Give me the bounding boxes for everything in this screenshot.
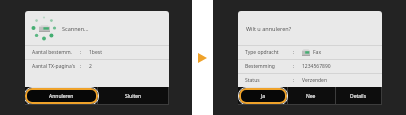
staticText: : bbox=[80, 63, 82, 70]
staticText: Scannen... bbox=[62, 25, 89, 32]
staticText: 2 bbox=[89, 63, 92, 70]
staticText: Aantal bestemm. bbox=[32, 49, 72, 56]
staticText: Wilt u annuleren? bbox=[246, 25, 292, 32]
button[interactable]: Status bbox=[238, 73, 382, 87]
button[interactable]: Bestemming bbox=[238, 59, 382, 73]
staticText: Fax bbox=[313, 49, 322, 56]
staticText: Details bbox=[350, 93, 367, 100]
button[interactable]: Type opdracht bbox=[238, 45, 382, 59]
button[interactable]: Ja bbox=[239, 88, 287, 104]
staticText: : bbox=[80, 49, 82, 56]
button[interactable]: Aantal bestemm. bbox=[25, 45, 169, 59]
staticText: Ja bbox=[261, 93, 266, 100]
staticText: Type opdracht bbox=[245, 49, 279, 56]
staticText: Annuleren bbox=[49, 93, 74, 100]
button[interactable]: Sluiten bbox=[97, 87, 169, 105]
staticText: : bbox=[293, 77, 295, 84]
staticText: 1best bbox=[89, 49, 102, 56]
staticText: : bbox=[293, 63, 295, 70]
staticText: 1234567890 bbox=[302, 63, 331, 70]
staticText: Status bbox=[245, 77, 260, 84]
staticText: Aantal TX-pagina's bbox=[32, 63, 76, 70]
button[interactable]: Nee bbox=[287, 87, 335, 105]
staticText: Verzenden bbox=[302, 77, 328, 84]
staticText: Nee bbox=[306, 93, 316, 100]
other: Next step bbox=[198, 53, 207, 63]
button[interactable]: Aantal TX-pagina's bbox=[25, 59, 169, 73]
staticText: Bestemming bbox=[245, 63, 275, 70]
button[interactable]: Details bbox=[335, 87, 382, 105]
staticText: Sluiten bbox=[125, 93, 142, 100]
button[interactable]: Annuleren bbox=[25, 88, 98, 104]
staticText: : bbox=[293, 49, 295, 56]
